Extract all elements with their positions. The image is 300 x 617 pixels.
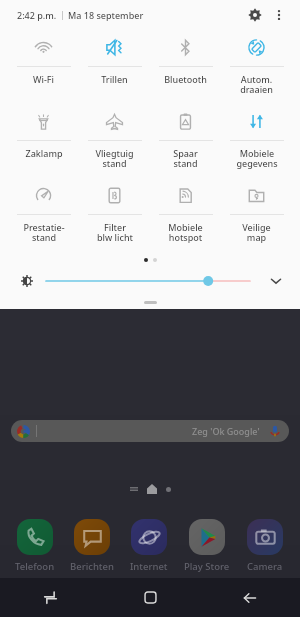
button[interactable]: Veilige map — [221, 184, 292, 244]
staticText: Prestatie- stand — [23, 221, 65, 244]
staticText: Ma 18 september — [68, 9, 144, 21]
button[interactable]: Spaar stand — [150, 110, 221, 170]
button[interactable]: Telefoon — [6, 519, 63, 573]
button[interactable]: Berichten — [63, 519, 120, 573]
button[interactable]: Expand — [266, 271, 286, 291]
button[interactable]: Home — [100, 578, 200, 617]
staticText: 2:42 p.m. — [17, 9, 57, 21]
staticText: Mobiele hotspot — [168, 221, 203, 244]
button[interactable]: Vliegtuig stand — [79, 110, 150, 170]
button[interactable]: Play Store — [178, 519, 236, 573]
staticText: Mobiele gegevens — [236, 147, 278, 170]
staticText: Wi-Fi — [33, 73, 54, 85]
staticText: Vliegtuig stand — [95, 147, 134, 170]
button[interactable]: Bluetooth — [150, 36, 221, 85]
button[interactable]: Trillen — [79, 36, 150, 85]
button[interactable]: Internet — [120, 519, 178, 573]
staticText: Bluetooth — [164, 73, 207, 85]
staticText: Camera — [247, 560, 283, 573]
button[interactable]: Back — [200, 578, 300, 617]
button[interactable]: Settings — [242, 2, 268, 28]
button[interactable]: Camera — [236, 519, 294, 573]
button[interactable]: Prestatie- stand — [8, 184, 79, 244]
staticText: Veilige map — [242, 221, 271, 244]
button[interactable]: Mobiele hotspot — [150, 184, 221, 244]
button[interactable]: Filter blw licht — [79, 184, 150, 244]
staticText: Zeg 'Ok Google' — [192, 425, 260, 437]
staticText: Internet — [130, 560, 168, 573]
button[interactable]: Recents — [0, 578, 100, 617]
button[interactable]: Zaklamp — [8, 110, 79, 159]
staticText: Telefoon — [15, 560, 55, 573]
staticText: Berichten — [70, 560, 114, 573]
staticText: Trillen — [101, 73, 128, 85]
staticText: Play Store — [184, 560, 230, 573]
staticText: Spaar stand — [173, 147, 198, 170]
button[interactable]: Autom. draaien — [221, 36, 292, 96]
staticText: Zaklamp — [25, 147, 63, 159]
button[interactable]: Mobiele gegevens — [221, 110, 292, 170]
button[interactable]: Wi-Fi — [8, 36, 79, 85]
staticText: Autom. draaien — [240, 73, 273, 96]
staticText: Filter blw licht — [97, 221, 133, 244]
button[interactable]: Zeg 'Ok Google' — [11, 420, 289, 442]
button[interactable]: More options — [268, 4, 290, 26]
